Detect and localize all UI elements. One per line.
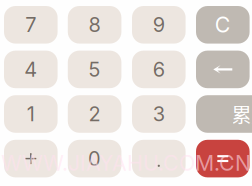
button[interactable]: Equals bbox=[196, 140, 250, 177]
button[interactable]: C bbox=[196, 6, 250, 44]
staticText: 9 bbox=[153, 13, 165, 37]
button[interactable]: 累加 bbox=[196, 95, 252, 133]
button[interactable]: 9 bbox=[132, 6, 186, 44]
button[interactable]: 7 bbox=[4, 6, 58, 44]
staticText: 5 bbox=[89, 57, 101, 81]
staticText: 7 bbox=[25, 13, 36, 37]
button[interactable]: 8 bbox=[68, 6, 121, 44]
button[interactable]: 1 bbox=[4, 95, 58, 133]
button[interactable]: 0 bbox=[68, 140, 121, 177]
button[interactable]: 5 bbox=[68, 51, 121, 88]
button[interactable]: 6 bbox=[132, 51, 186, 88]
staticText: 8 bbox=[89, 13, 101, 37]
button[interactable] bbox=[4, 140, 58, 177]
staticText: 3 bbox=[153, 102, 165, 126]
staticText: 2 bbox=[89, 102, 101, 126]
button[interactable]: 2 bbox=[68, 95, 121, 133]
staticText: 0 bbox=[88, 146, 101, 171]
button[interactable]: Backspace bbox=[196, 51, 250, 88]
staticText: 4 bbox=[24, 57, 37, 81]
button[interactable]: 4 bbox=[4, 51, 58, 88]
button[interactable] bbox=[132, 140, 186, 177]
staticText: 1 bbox=[27, 102, 35, 126]
staticText: C bbox=[215, 12, 231, 38]
staticText: WWW.JIAYAHU.COM.CN bbox=[1, 150, 251, 176]
staticText: 累加 bbox=[231, 99, 252, 128]
staticText: 6 bbox=[153, 57, 165, 81]
button[interactable]: 3 bbox=[132, 95, 186, 133]
